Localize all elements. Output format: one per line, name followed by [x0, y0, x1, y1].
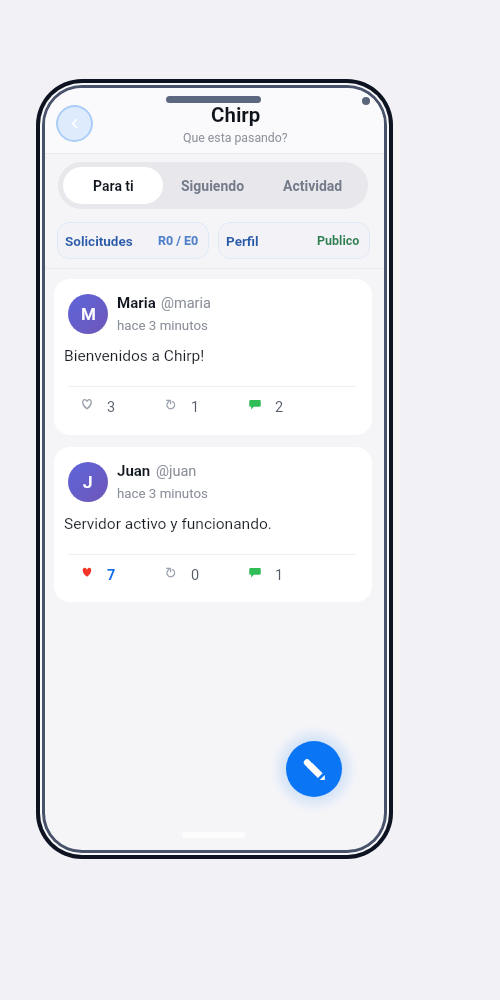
staticText: 3: [107, 399, 116, 416]
staticText: Siguiendo: [181, 178, 245, 194]
button[interactable]: Actividad: [263, 167, 363, 204]
staticText: @juan: [156, 463, 197, 480]
staticText: M: [81, 304, 96, 324]
button[interactable]: Solicitudes: [57, 222, 209, 259]
staticText: hace 3 minutos: [117, 486, 208, 502]
staticText: 2: [275, 399, 284, 416]
staticText: J: [83, 472, 93, 492]
staticText: Servidor activo y funcionando.: [64, 515, 272, 533]
button[interactable]: 1: [249, 564, 333, 584]
button[interactable]: New post: [286, 741, 342, 797]
staticText: 1: [191, 399, 200, 416]
button[interactable]: 0: [165, 564, 249, 584]
button[interactable]: Back: [56, 105, 93, 142]
staticText: hace 3 minutos: [117, 318, 208, 334]
staticText: Que esta pasando?: [183, 131, 288, 145]
staticText: Bienvenidos a Chirp!: [64, 347, 205, 365]
button[interactable]: 3: [81, 396, 165, 416]
staticText: 0: [191, 567, 200, 584]
button[interactable]: 2: [249, 396, 333, 416]
button[interactable]: J: [54, 447, 372, 602]
button[interactable]: Perfil: [218, 222, 370, 259]
staticText: R0 / E0: [158, 233, 199, 248]
staticText: Para ti: [93, 178, 134, 194]
staticText: @maria: [161, 295, 211, 312]
button[interactable]: Para ti: [63, 167, 163, 204]
staticText: Maria: [117, 294, 156, 312]
button[interactable]: 1: [165, 396, 249, 416]
staticText: 7: [107, 567, 116, 584]
staticText: Juan: [117, 462, 151, 480]
staticText: Actividad: [283, 178, 343, 194]
staticText: Solicitudes: [65, 233, 133, 249]
button[interactable]: Siguiendo: [163, 167, 263, 204]
staticText: 1: [275, 567, 284, 584]
staticText: Chirp: [211, 103, 261, 127]
button[interactable]: 7: [81, 564, 165, 584]
staticText: Perfil: [226, 233, 259, 249]
staticText: Publico: [317, 233, 360, 248]
button[interactable]: M: [54, 279, 372, 435]
